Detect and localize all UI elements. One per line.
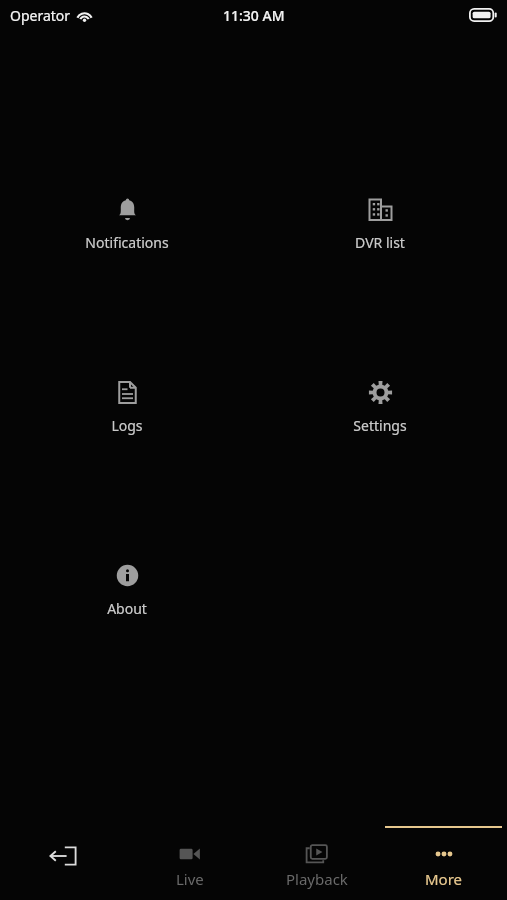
button[interactable]: Logs <box>42 380 212 435</box>
staticText: Operator <box>10 6 71 25</box>
staticText: Playback <box>286 869 348 889</box>
staticText: Notifications <box>85 233 169 252</box>
staticText: DVR list <box>355 233 405 252</box>
button[interactable]: Settings <box>295 380 465 435</box>
staticText: Settings <box>353 416 407 435</box>
staticText: Logs <box>111 416 143 435</box>
button[interactable]: More <box>380 810 507 900</box>
button[interactable]: Live <box>126 810 253 900</box>
button[interactable]: Log out <box>0 810 126 900</box>
button[interactable]: About <box>42 563 212 618</box>
staticText: 11:30 AM <box>223 6 285 25</box>
button[interactable]: Notifications <box>42 197 212 252</box>
button[interactable]: DVR list <box>295 197 465 252</box>
staticText: More <box>425 869 463 889</box>
staticText: About <box>107 599 147 618</box>
staticText: Live <box>176 869 204 889</box>
button[interactable]: Playback <box>253 810 380 900</box>
